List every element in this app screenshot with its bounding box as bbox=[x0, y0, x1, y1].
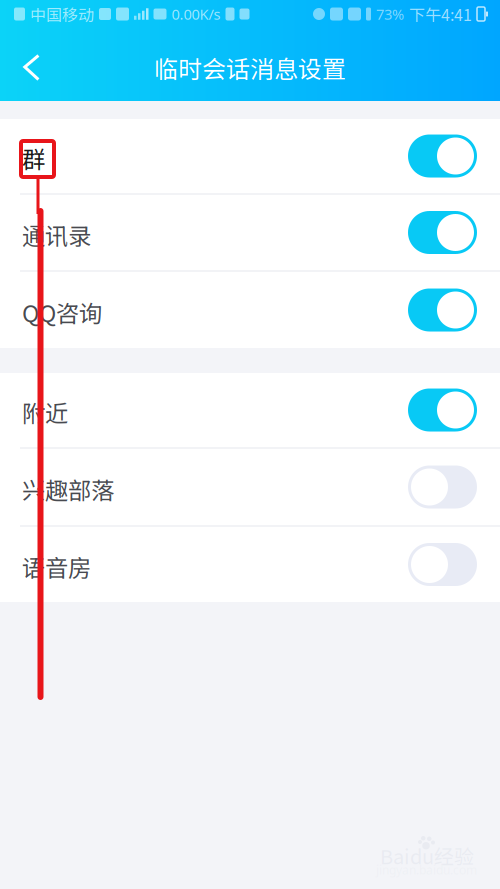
button[interactable]: 附近 bbox=[0, 373, 500, 447]
button[interactable]: 语音房 bbox=[0, 527, 500, 602]
button[interactable]: QQ咨询 bbox=[0, 272, 500, 348]
button[interactable]: 兴趣部落 bbox=[0, 449, 500, 525]
button[interactable]: 群 bbox=[0, 119, 500, 193]
button[interactable]: 通讯录 bbox=[0, 195, 500, 270]
staticText: 0.00K/s bbox=[171, 4, 220, 24]
staticText: 兴趣部落 bbox=[22, 472, 114, 506]
staticText: 语音房 bbox=[22, 550, 91, 583]
staticText: QQ咨询 bbox=[22, 295, 102, 329]
staticText: 临时会话消息设置 bbox=[154, 50, 346, 85]
staticText: 通讯录 bbox=[22, 218, 91, 251]
staticText: Baidu经验 bbox=[380, 841, 474, 870]
staticText: 附近 bbox=[22, 395, 68, 429]
staticText: 群 bbox=[22, 141, 45, 175]
button[interactable]: Back bbox=[10, 46, 54, 89]
staticText: 下午4:41 bbox=[409, 2, 472, 26]
staticText: 中国移动 bbox=[30, 2, 94, 26]
staticText: 73% bbox=[376, 4, 404, 24]
